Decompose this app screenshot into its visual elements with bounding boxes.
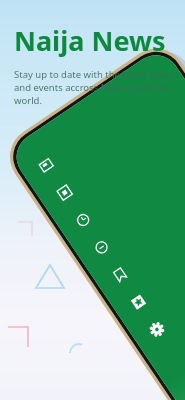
staticText: Naija News [14, 22, 166, 59]
button[interactable]: App preview [0, 0, 185, 400]
staticText: Stay up to date with the latest news and… [14, 68, 175, 107]
